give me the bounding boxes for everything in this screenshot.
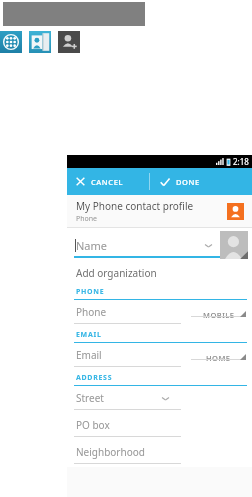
button[interactable]: Name [67, 228, 220, 262]
staticText: Name [76, 238, 108, 253]
staticText: Email [76, 348, 102, 362]
button[interactable]: CANCEL [67, 168, 149, 195]
staticText: Phone [76, 214, 98, 224]
staticText: Street [76, 391, 104, 405]
button[interactable]: Street [67, 386, 252, 413]
staticText: Neighborhood [76, 445, 145, 459]
button[interactable]: Neighborhood [67, 440, 252, 467]
staticText: PHONE [76, 287, 105, 297]
button[interactable]: Add photo [220, 231, 248, 259]
staticText: HOME [206, 353, 231, 363]
staticText: PO box [76, 418, 110, 432]
staticText: DONE [176, 177, 200, 187]
button[interactable]: Phone [67, 300, 252, 327]
staticText: MOBILE [203, 310, 235, 320]
button[interactable]: Add contact [58, 31, 80, 53]
staticText: 2:18 [233, 156, 249, 167]
button[interactable]: Account [227, 203, 244, 220]
button[interactable]: Add organization [67, 262, 252, 284]
button[interactable]: PO box [67, 413, 252, 440]
button[interactable]: People [29, 31, 51, 53]
staticText: ADDRESS [76, 373, 113, 383]
staticText: Add organization [76, 266, 157, 280]
button[interactable]: Apps [0, 31, 22, 53]
button[interactable]: DONE [150, 168, 252, 195]
staticText: Phone [76, 305, 107, 319]
staticText: My Phone contact profile [76, 199, 194, 213]
staticText: EMAIL [76, 330, 102, 340]
button[interactable]: Email [67, 343, 252, 370]
staticText: CANCEL [91, 177, 124, 187]
